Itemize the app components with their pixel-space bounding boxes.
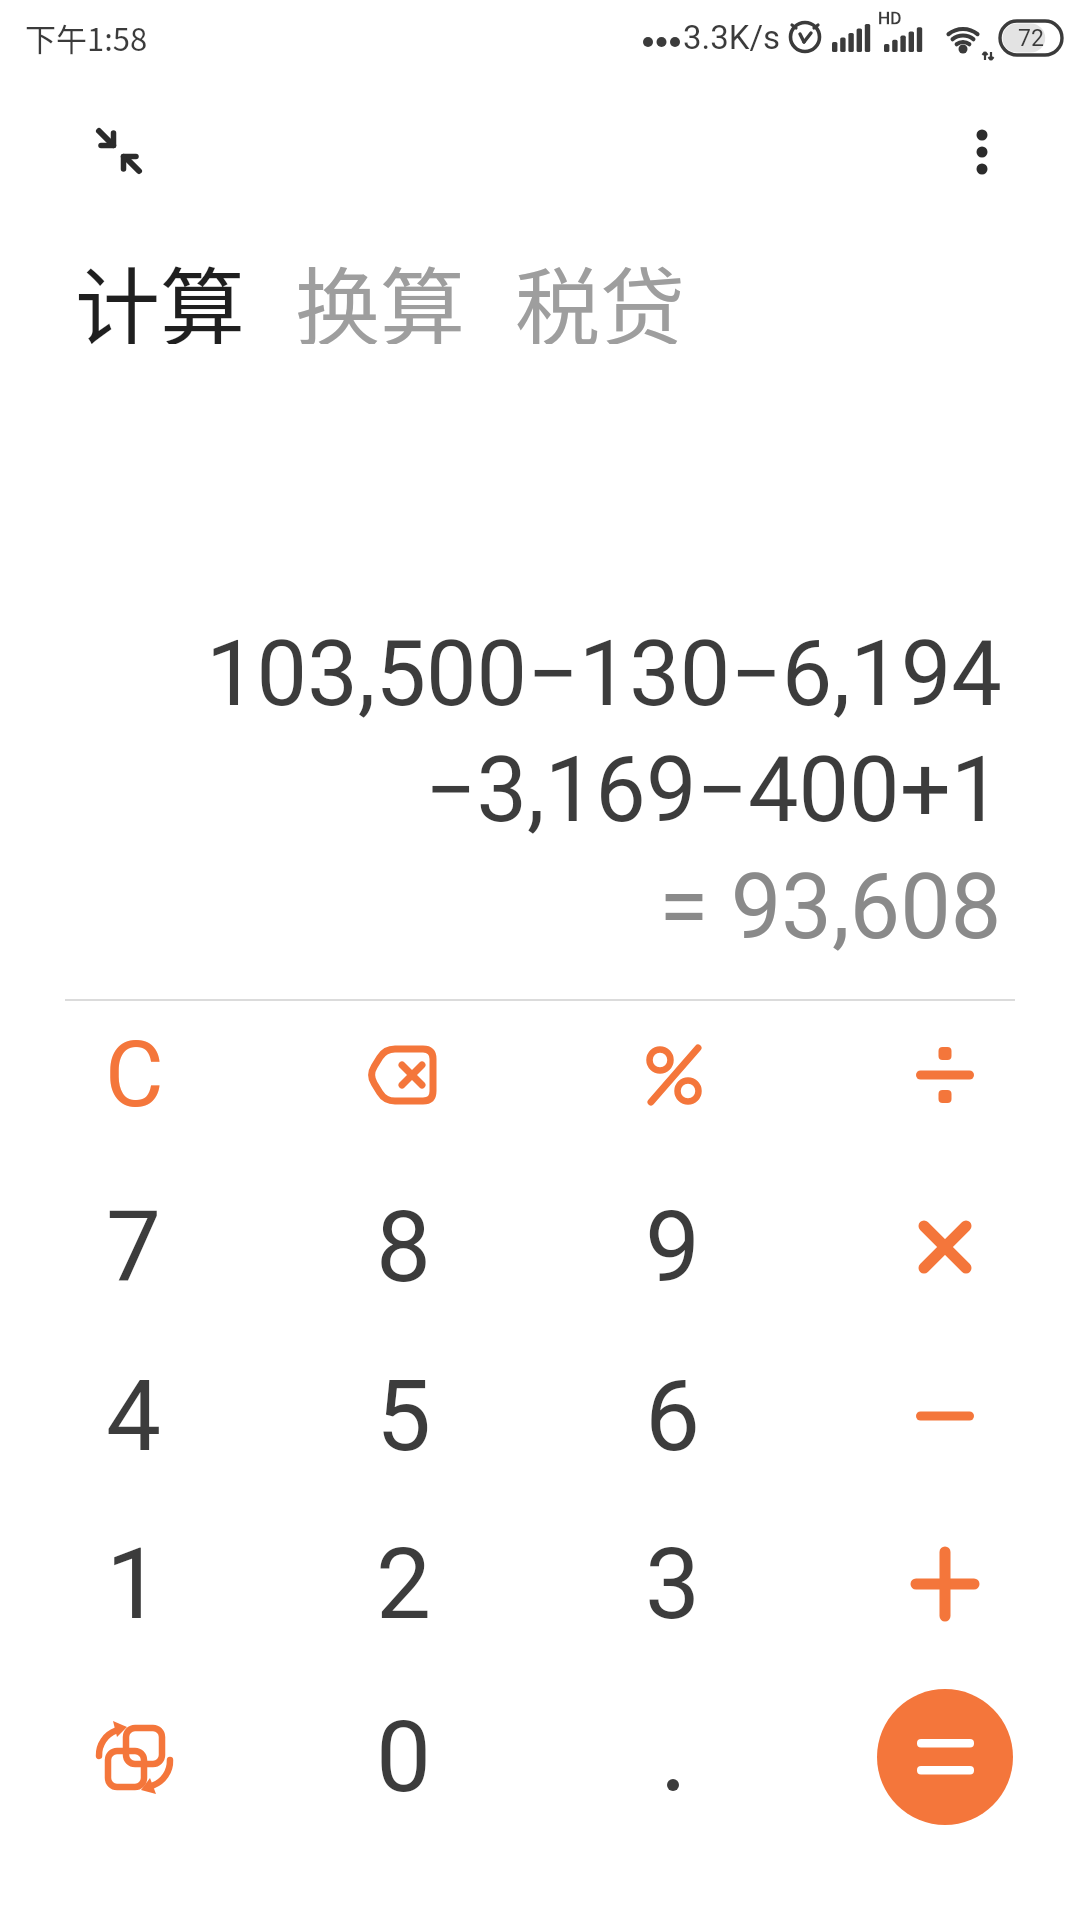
- staticText: 8: [376, 1190, 432, 1305]
- staticText: 3.3K/s: [683, 18, 781, 57]
- button[interactable]: 0: [324, 1677, 484, 1837]
- button[interactable]: 5: [324, 1336, 484, 1496]
- button[interactable]: 2: [324, 1504, 484, 1664]
- staticText: 9: [645, 1190, 701, 1305]
- button[interactable]: 计算: [75, 240, 246, 344]
- button[interactable]: 税贷: [515, 240, 686, 344]
- button[interactable]: [593, 995, 753, 1155]
- button[interactable]: [865, 1504, 1025, 1664]
- staticText: 计算: [75, 240, 246, 344]
- button[interactable]: [952, 122, 1012, 182]
- button[interactable]: [324, 995, 484, 1155]
- staticText: 72: [1018, 25, 1044, 52]
- button[interactable]: 4: [54, 1336, 214, 1496]
- staticText: 1: [106, 1527, 162, 1642]
- button[interactable]: 6: [593, 1336, 753, 1496]
- staticText: 7: [106, 1190, 162, 1305]
- staticText: 0: [376, 1700, 432, 1815]
- staticText: C: [105, 1023, 164, 1128]
- staticText: 税贷: [515, 240, 686, 344]
- button[interactable]: [877, 1689, 1013, 1825]
- button[interactable]: 1: [54, 1504, 214, 1664]
- staticText: 5: [376, 1359, 432, 1474]
- button[interactable]: 7: [54, 1167, 214, 1327]
- button[interactable]: [865, 995, 1025, 1155]
- button[interactable]: 8: [324, 1167, 484, 1327]
- staticText: = 93,608: [659, 855, 1002, 960]
- button[interactable]: 9: [593, 1167, 753, 1327]
- button[interactable]: C: [54, 995, 214, 1155]
- staticText: HD: [878, 8, 902, 28]
- staticText: 6: [645, 1359, 701, 1474]
- staticText: 103,500−130−6,194: [206, 622, 1002, 727]
- button[interactable]: [593, 1677, 753, 1837]
- button[interactable]: [865, 1336, 1025, 1496]
- staticText: 2: [376, 1527, 432, 1642]
- staticText: −3,169−400+1: [425, 738, 1002, 843]
- staticText: 换算: [295, 240, 466, 344]
- button[interactable]: 3: [593, 1504, 753, 1664]
- button[interactable]: [865, 1167, 1025, 1327]
- staticText: 4: [106, 1359, 162, 1474]
- staticText: 3: [645, 1527, 701, 1642]
- button[interactable]: [85, 118, 151, 184]
- staticText: 下午1:58: [25, 15, 148, 60]
- button[interactable]: [54, 1677, 214, 1837]
- button[interactable]: 换算: [295, 240, 466, 344]
